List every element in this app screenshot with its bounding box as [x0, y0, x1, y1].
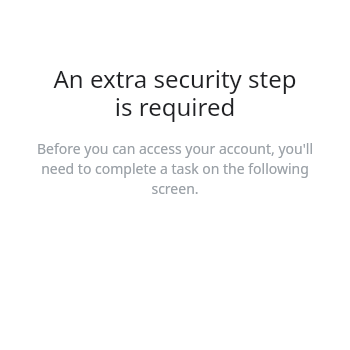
staticText: Before you can access your account, you'… [19, 139, 331, 198]
staticText: An extra security step is required [49, 62, 301, 123]
